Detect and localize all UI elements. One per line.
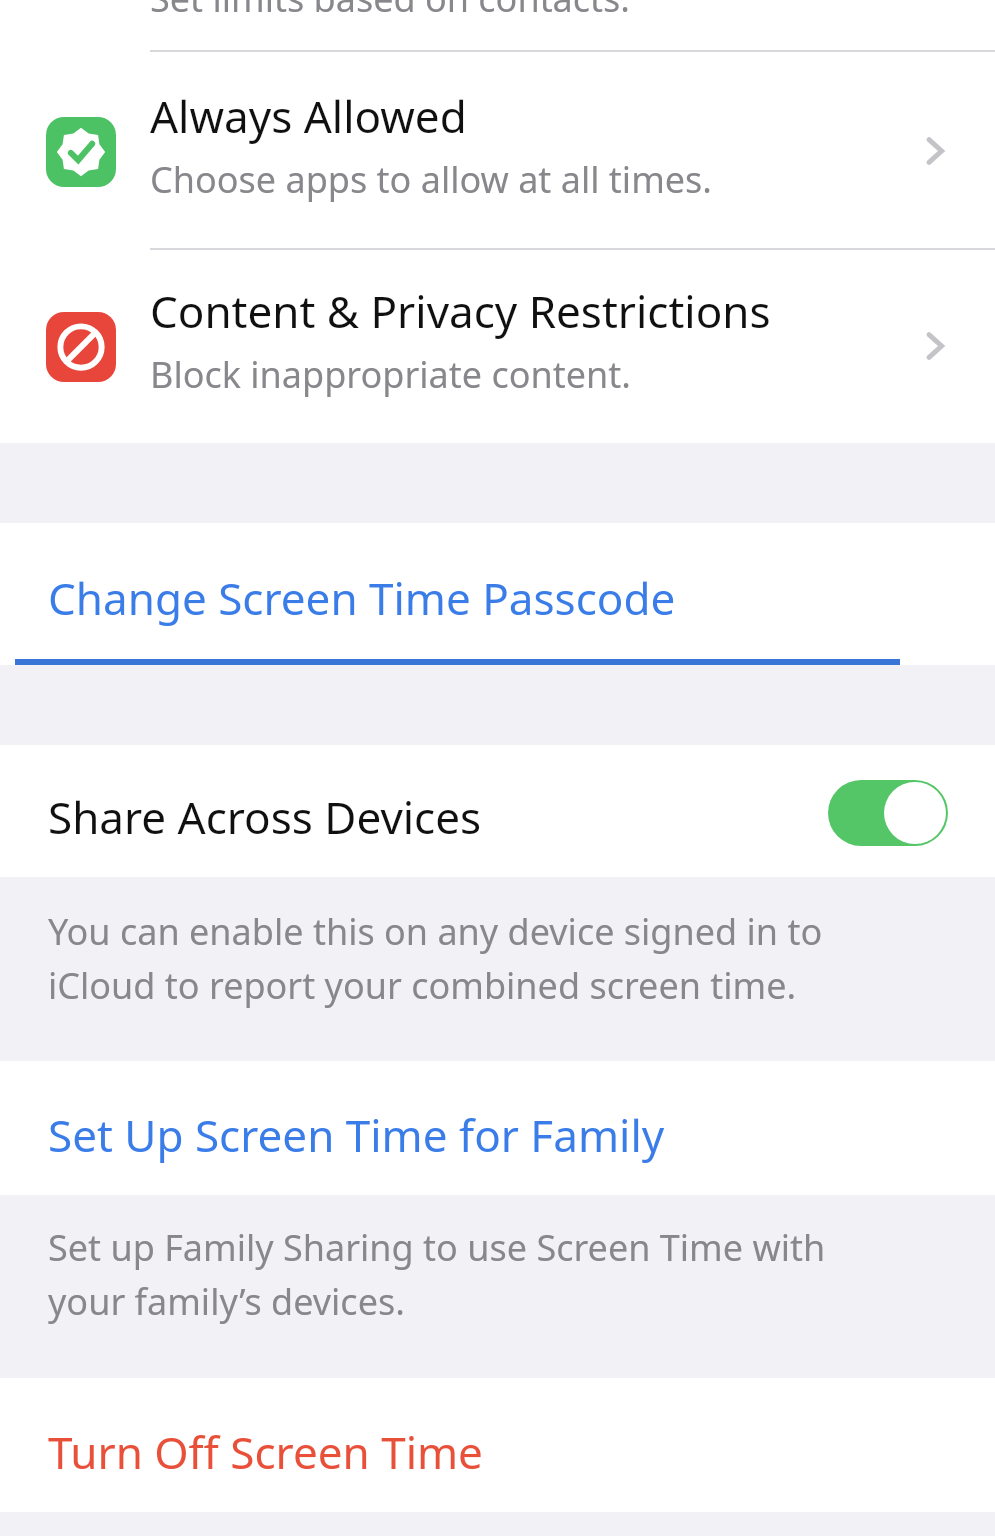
staticText: Set up Family Sharing to use Screen Time…	[48, 1223, 826, 1326]
staticText: Choose apps to allow at all times.	[150, 155, 712, 204]
staticText: Change Screen Time Passcode	[48, 568, 676, 628]
button[interactable]: Share Across Devices	[0, 745, 995, 877]
staticText: Set Up Screen Time for Family	[48, 1105, 665, 1165]
button[interactable]: Content and Privacy Restrictions	[0, 250, 995, 443]
staticText: Set limits based on contacts.	[150, 0, 630, 23]
other: Content and Privacy Restrictions	[46, 312, 116, 382]
button[interactable]: Change Screen Time Passcode	[0, 523, 995, 665]
staticText: Block inappropriate content.	[150, 350, 631, 399]
staticText: You can enable this on any device signed…	[48, 907, 823, 1010]
staticText: Share Across Devices	[48, 787, 482, 847]
button[interactable]: Share Across Devices toggle, on	[828, 780, 948, 846]
button[interactable]: Turn Off Screen Time	[0, 1378, 995, 1512]
staticText: Content & Privacy Restrictions	[150, 281, 771, 341]
other: Always Allowed	[46, 117, 116, 187]
staticText: Always Allowed	[150, 86, 467, 146]
button[interactable]: Set Up Screen Time for Family	[0, 1061, 995, 1195]
staticText: Turn Off Screen Time	[48, 1422, 483, 1482]
button[interactable]: Always Allowed	[0, 52, 995, 248]
